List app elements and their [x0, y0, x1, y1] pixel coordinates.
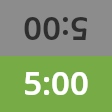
button[interactable]: Your clock, 5 minutes 0 seconds — [0, 56, 112, 112]
staticText: 5:00 — [23, 60, 89, 105]
staticText: 5:00 — [23, 7, 89, 52]
button[interactable]: Opponent clock, 5 minutes 0 seconds — [0, 0, 112, 56]
